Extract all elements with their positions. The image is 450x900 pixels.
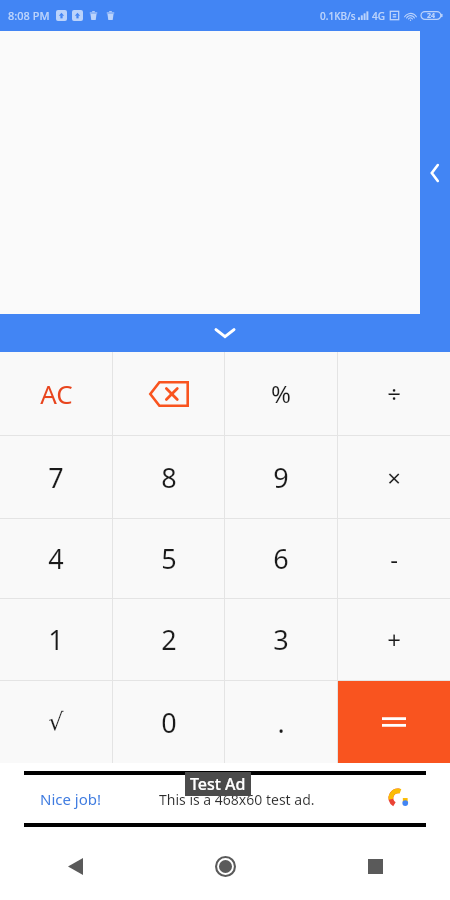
button[interactable]: Home	[150, 835, 300, 897]
button[interactable]: AC	[0, 352, 112, 435]
staticText: %	[271, 377, 291, 410]
button[interactable]: 0	[113, 681, 224, 763]
button[interactable]: 3	[225, 599, 337, 680]
button[interactable]: .	[225, 681, 337, 763]
staticText: 8	[161, 459, 177, 496]
staticText: Nice job!	[40, 789, 102, 809]
staticText: 3	[273, 621, 289, 658]
staticText: √	[48, 708, 64, 736]
staticText: ×	[387, 461, 401, 494]
staticText: -	[390, 542, 398, 575]
staticText: 1	[48, 621, 64, 658]
button[interactable]: 1	[0, 599, 112, 680]
staticText: This is a 468x60 test ad.	[159, 790, 315, 809]
staticText: 0	[161, 704, 177, 741]
button[interactable]: 5	[113, 519, 224, 598]
button[interactable]: 6	[225, 519, 337, 598]
button[interactable]: +	[338, 599, 450, 680]
staticText: AC	[40, 376, 73, 411]
button[interactable]: %	[225, 352, 337, 435]
button[interactable]: Back	[0, 835, 150, 897]
button[interactable]: 4	[0, 519, 112, 598]
staticText: +	[387, 623, 401, 656]
button[interactable]: -	[338, 519, 450, 598]
staticText: 7	[48, 459, 64, 496]
staticText: 6	[273, 540, 289, 577]
staticText: Test Ad	[190, 773, 246, 795]
button[interactable]	[338, 681, 450, 763]
button[interactable]: Recent apps	[300, 835, 450, 897]
button[interactable]: ÷	[338, 352, 450, 435]
staticText: .	[277, 704, 285, 741]
staticText: 5	[161, 540, 177, 577]
staticText: 4	[48, 540, 64, 577]
button[interactable]: 7	[0, 436, 112, 518]
staticText: 24	[427, 11, 436, 21]
button[interactable]: Collapse	[0, 314, 450, 352]
button[interactable]: Nice job!	[24, 775, 426, 823]
button[interactable]: 8	[113, 436, 224, 518]
staticText: 0.1KB/s	[320, 9, 356, 23]
button[interactable]: 9	[225, 436, 337, 518]
button[interactable]: √	[0, 681, 112, 763]
button[interactable]: Backspace	[113, 352, 224, 435]
button[interactable]: 2	[113, 599, 224, 680]
button[interactable]: Expand history	[420, 31, 450, 314]
staticText: 9	[273, 459, 289, 496]
staticText: 8:08 PM	[8, 8, 50, 23]
staticText: 4G	[372, 9, 385, 23]
button[interactable]: ×	[338, 436, 450, 518]
staticText: ÷	[387, 377, 401, 410]
staticText: 2	[161, 621, 177, 658]
